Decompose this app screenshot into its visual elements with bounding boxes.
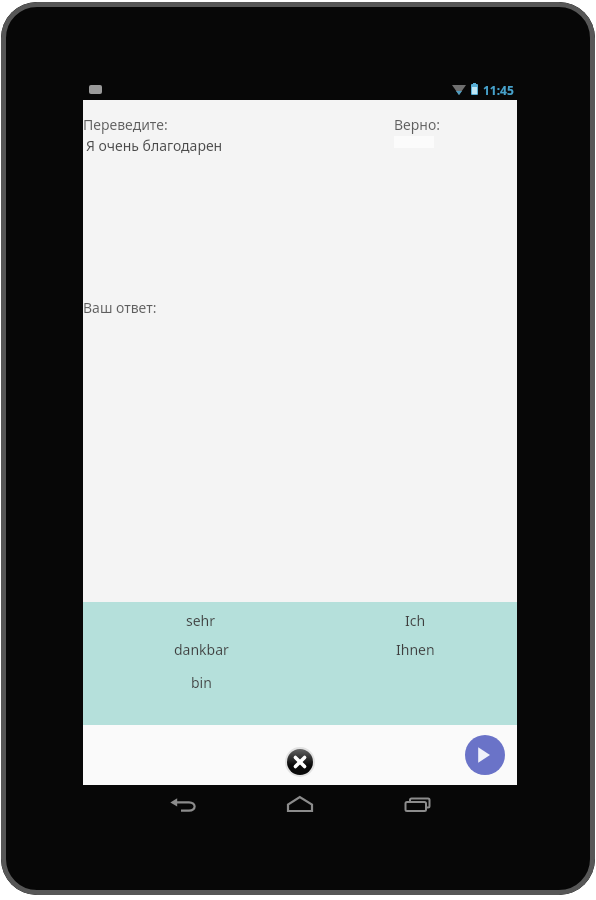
button[interactable]: bin bbox=[146, 670, 256, 694]
staticText: Ihnen bbox=[396, 640, 435, 659]
staticText: Ich bbox=[405, 611, 426, 630]
staticText: Переведите: bbox=[83, 115, 168, 134]
staticText: 11:45 bbox=[483, 82, 514, 98]
button[interactable] bbox=[285, 747, 315, 777]
button[interactable]: sehr bbox=[146, 608, 256, 632]
button[interactable]: Ich bbox=[360, 608, 470, 632]
button[interactable] bbox=[465, 735, 505, 775]
button[interactable]: dankbar bbox=[146, 637, 256, 661]
button[interactable]: Ihnen bbox=[360, 637, 470, 661]
staticText: Ваш ответ: bbox=[83, 298, 157, 317]
staticText: sehr bbox=[186, 611, 216, 630]
staticText: Я очень благодарен bbox=[86, 136, 223, 155]
staticText: bin bbox=[191, 673, 212, 692]
staticText: dankbar bbox=[174, 640, 229, 659]
staticText: Верно: bbox=[394, 115, 440, 134]
